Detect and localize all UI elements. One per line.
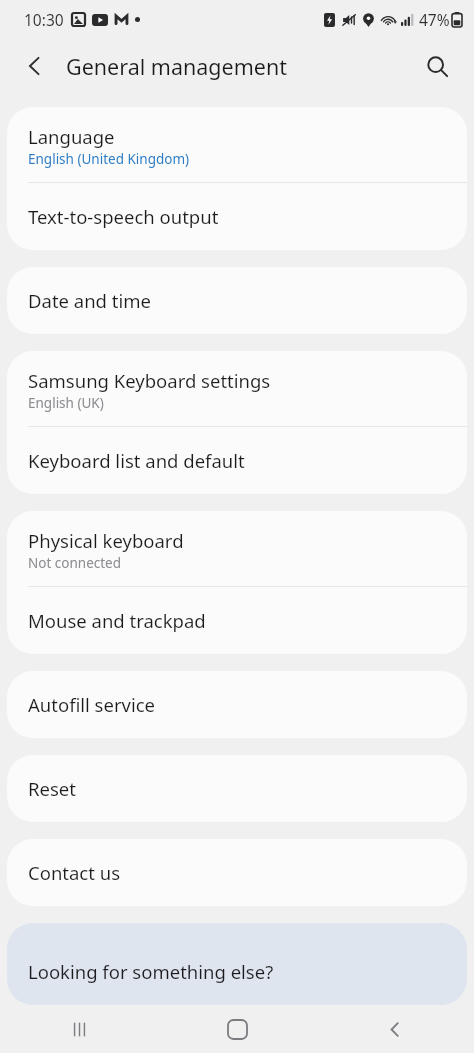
button[interactable]: Language xyxy=(7,107,467,182)
button[interactable]: Mouse and trackpad xyxy=(7,587,467,654)
button[interactable]: Text-to-speech output xyxy=(7,183,467,250)
staticText: Not connected xyxy=(28,554,122,572)
staticText: Contact us xyxy=(28,860,121,885)
button[interactable]: Looking for something else? xyxy=(7,923,467,1005)
staticText: Text-to-speech output xyxy=(28,204,219,229)
staticText: Date and time xyxy=(28,288,151,313)
button[interactable]: Autofill service xyxy=(7,671,467,738)
button[interactable]: Physical keyboard xyxy=(7,511,467,586)
staticText: English (United Kingdom) xyxy=(28,150,190,168)
staticText: Language xyxy=(28,124,115,149)
staticText: General management xyxy=(66,52,287,81)
staticText: 47% xyxy=(419,9,450,30)
button[interactable]: Home xyxy=(215,1007,259,1051)
button[interactable]: Recents xyxy=(57,1007,101,1051)
staticText: Autofill service xyxy=(28,692,156,717)
button[interactable]: Back xyxy=(15,46,55,86)
staticText: Mouse and trackpad xyxy=(28,608,206,633)
staticText: Reset xyxy=(28,776,76,801)
staticText: Keyboard list and default xyxy=(28,448,245,473)
button[interactable]: Date and time xyxy=(7,267,467,334)
staticText: Looking for something else? xyxy=(28,959,274,984)
button[interactable]: Back xyxy=(373,1007,417,1051)
button[interactable]: Search xyxy=(417,46,457,86)
button[interactable]: Contact us xyxy=(7,839,467,906)
staticText: 10:30 xyxy=(24,9,64,30)
button[interactable]: Reset xyxy=(7,755,467,822)
staticText: Samsung Keyboard settings xyxy=(28,368,271,393)
staticText: English (UK) xyxy=(28,394,104,412)
button[interactable]: Samsung Keyboard settings xyxy=(7,351,467,426)
staticText: Physical keyboard xyxy=(28,528,184,553)
button[interactable]: Keyboard list and default xyxy=(7,427,467,494)
